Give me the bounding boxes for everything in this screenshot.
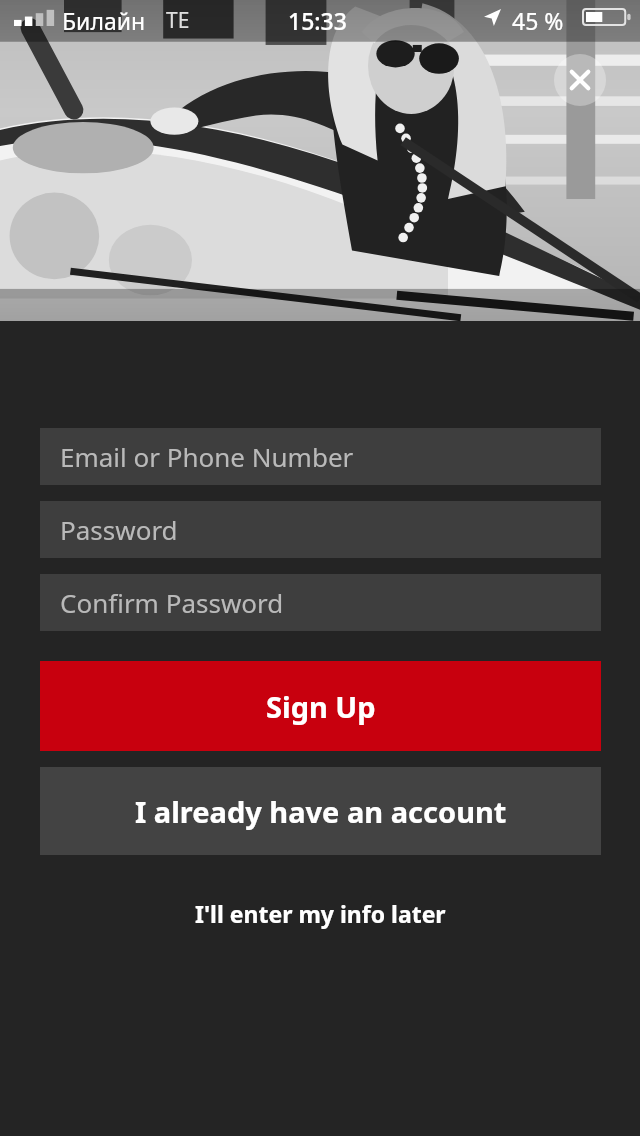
button[interactable]: Sign Up [40,661,601,751]
button[interactable]: Confirm Password [40,574,601,631]
staticText: I'll enter my info later [195,898,446,929]
button[interactable]: Password [40,501,601,558]
staticText: I already have an account [135,792,507,831]
button[interactable]: I'll enter my info later [40,893,601,933]
staticText: TE [166,6,190,35]
staticText: 45 % [512,5,564,36]
staticText: Билайн [62,5,146,36]
button[interactable]: Close [554,54,606,106]
button[interactable]: Email or Phone Number [40,428,601,485]
staticText: Sign Up [266,687,376,726]
staticText: Email or Phone Number [60,439,354,474]
staticText: 15:33 [288,5,347,36]
staticText: Confirm Password [60,585,284,620]
staticText: Password [60,512,178,547]
button[interactable]: I already have an account [40,767,601,855]
